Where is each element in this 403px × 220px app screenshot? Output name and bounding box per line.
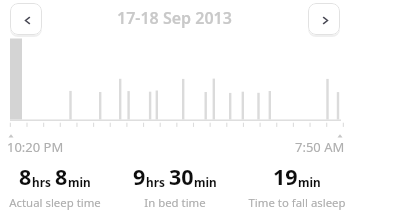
staticText: 8 <box>19 162 32 191</box>
staticText: Actual sleep time <box>9 195 101 211</box>
button[interactable]: Next day <box>308 3 340 35</box>
staticText: 8 <box>55 162 68 191</box>
staticText: 17-18 Sep 2013 <box>117 7 232 29</box>
staticText: 10:20 PM <box>7 138 64 156</box>
staticText: min <box>298 174 321 190</box>
staticText: hrs <box>146 174 165 190</box>
button[interactable]: Previous day <box>10 3 42 35</box>
staticText: 19 <box>273 162 298 191</box>
staticText: Time to fall asleep <box>248 195 346 211</box>
staticText: min <box>194 174 217 190</box>
staticText: In bed time <box>144 195 206 211</box>
staticText: min <box>68 174 91 190</box>
staticText: hrs <box>32 174 51 190</box>
staticText: 7:50 AM <box>295 138 345 156</box>
staticText: 9 <box>133 162 146 191</box>
staticText: 30 <box>169 162 194 191</box>
